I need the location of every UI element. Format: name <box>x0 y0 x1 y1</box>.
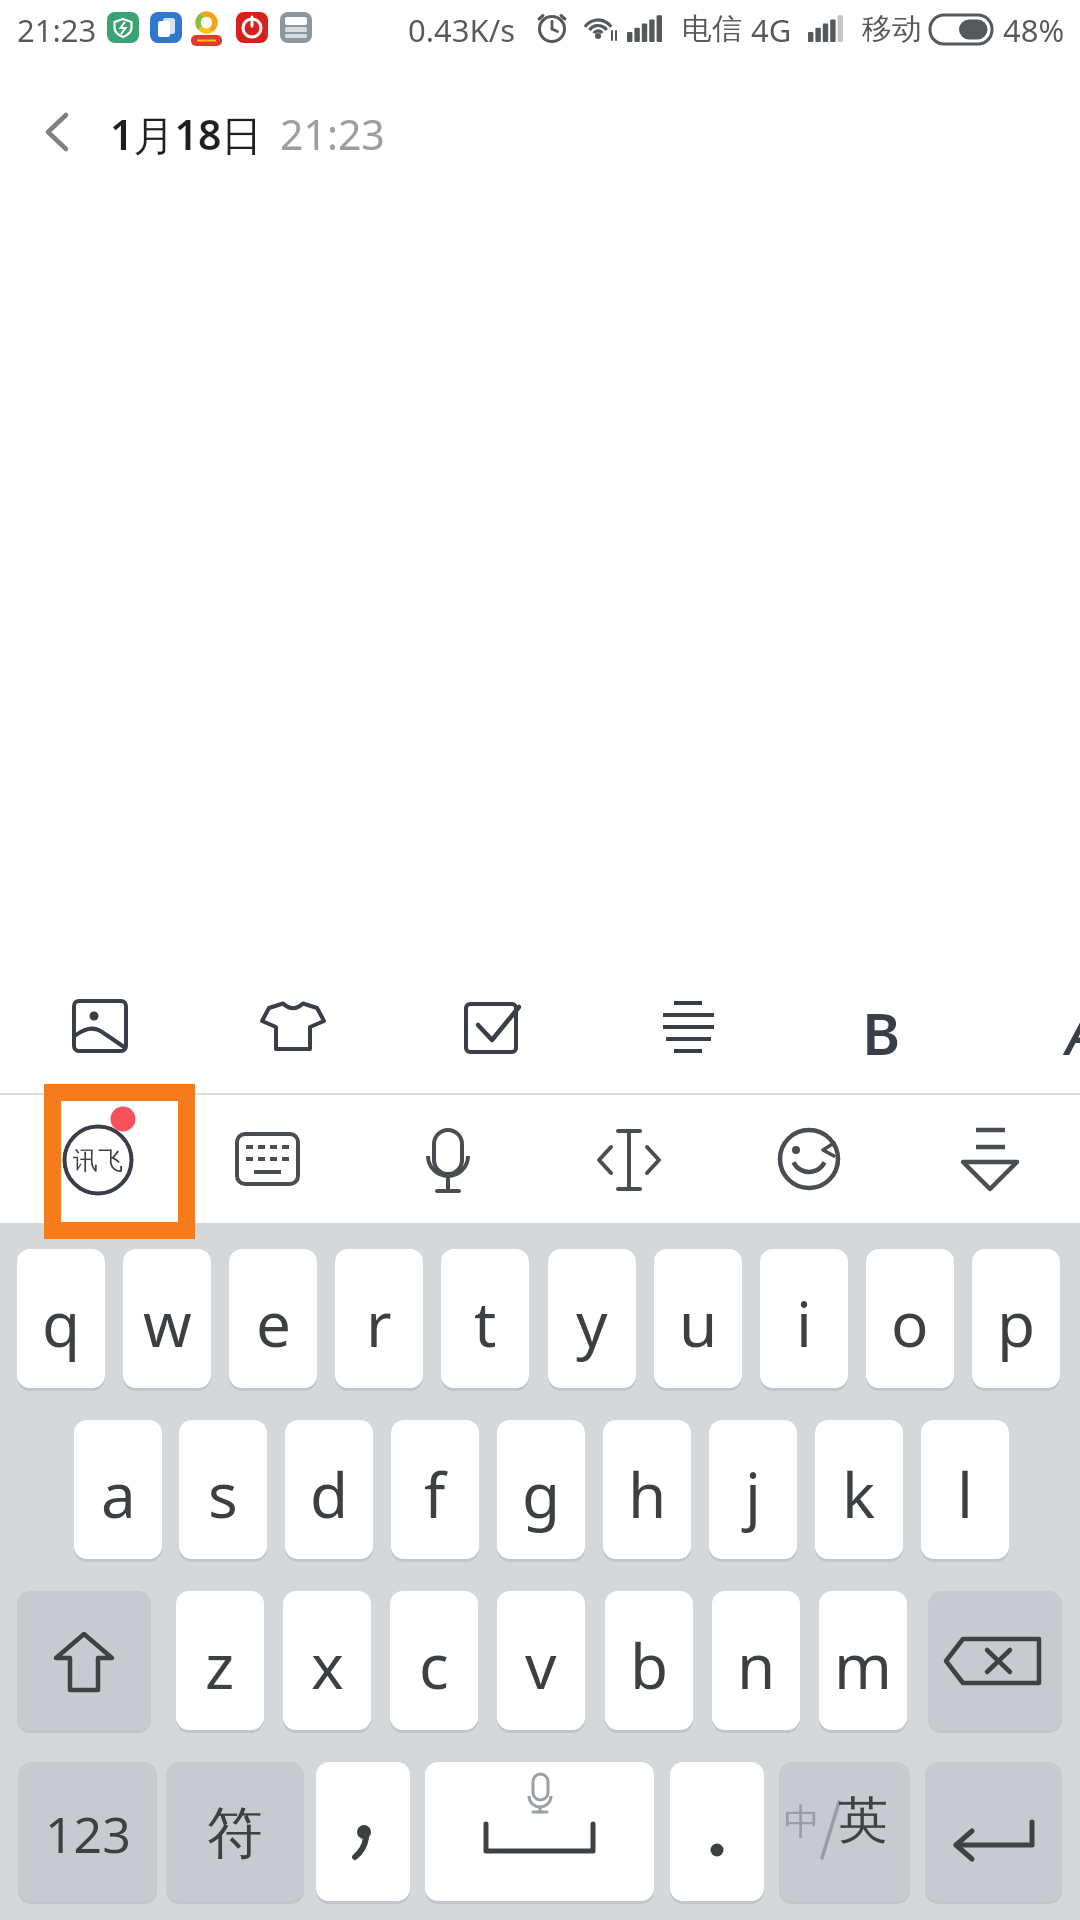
staticText: t <box>474 1281 497 1365</box>
button[interactable] <box>425 1762 654 1901</box>
button[interactable]: m <box>819 1591 907 1730</box>
button[interactable] <box>653 991 723 1061</box>
staticText: 英 <box>838 1789 888 1852</box>
staticText: d <box>310 1452 349 1536</box>
button[interactable] <box>772 1125 842 1195</box>
button[interactable] <box>846 991 916 1061</box>
button[interactable] <box>928 1591 1062 1730</box>
staticText: 中 <box>784 1799 820 1844</box>
button[interactable] <box>594 1125 664 1195</box>
button[interactable] <box>413 1125 483 1195</box>
button[interactable] <box>1045 991 1080 1061</box>
button[interactable] <box>455 991 525 1061</box>
button[interactable]: f <box>391 1420 479 1559</box>
staticText: h <box>628 1452 667 1536</box>
button[interactable]: h <box>603 1420 691 1559</box>
button[interactable]: v <box>497 1591 585 1730</box>
button[interactable] <box>17 1591 151 1730</box>
button[interactable]: d <box>285 1420 373 1559</box>
staticText: 符 <box>207 1798 263 1869</box>
staticText: A <box>1066 993 1080 1072</box>
button[interactable]: u <box>654 1249 742 1388</box>
button[interactable] <box>44 1084 195 1239</box>
button[interactable]: i <box>760 1249 848 1388</box>
button[interactable] <box>30 100 90 164</box>
staticText: r <box>366 1281 392 1365</box>
staticText: q <box>42 1281 81 1365</box>
button[interactable]: z <box>176 1591 264 1730</box>
staticText: 21:23 <box>17 9 97 51</box>
staticText: 48% <box>1003 9 1065 51</box>
staticText: 移动 <box>862 10 922 48</box>
button[interactable] <box>779 1762 910 1901</box>
staticText: B <box>862 993 901 1072</box>
staticText: b <box>630 1623 669 1707</box>
button[interactable] <box>953 1125 1023 1195</box>
staticText: w <box>143 1281 192 1365</box>
staticText: c <box>419 1623 449 1707</box>
staticText: s <box>208 1452 238 1536</box>
staticText: j <box>745 1452 761 1536</box>
button[interactable]: n <box>712 1591 800 1730</box>
staticText: l <box>957 1452 973 1536</box>
staticText: k <box>842 1452 876 1536</box>
staticText: 电信 <box>682 10 742 48</box>
staticText: y <box>576 1281 608 1365</box>
button[interactable]: 123 <box>18 1762 157 1901</box>
button[interactable]: j <box>709 1420 797 1559</box>
button[interactable] <box>232 1125 302 1195</box>
button[interactable] <box>258 991 328 1061</box>
button[interactable]: y <box>548 1249 636 1388</box>
staticText: p <box>997 1281 1036 1365</box>
button[interactable]: t <box>441 1249 529 1388</box>
button[interactable]: e <box>229 1249 317 1388</box>
button[interactable]: o <box>866 1249 954 1388</box>
staticText: m <box>834 1623 892 1707</box>
staticText: a <box>101 1452 136 1536</box>
button[interactable]: q <box>17 1249 105 1388</box>
staticText: x <box>311 1623 344 1707</box>
staticText: 讯飞 <box>73 1145 123 1176</box>
staticText: o <box>891 1281 929 1365</box>
staticText: 123 <box>45 1800 131 1868</box>
button[interactable] <box>925 1762 1062 1901</box>
button[interactable]: b <box>605 1591 693 1730</box>
staticText: n <box>737 1623 776 1707</box>
button[interactable]: 符 <box>166 1762 304 1901</box>
button[interactable]: k <box>815 1420 903 1559</box>
staticText: z <box>205 1623 235 1707</box>
staticText: g <box>522 1452 561 1536</box>
staticText: 1月18日 <box>110 106 263 162</box>
button[interactable]: a <box>74 1420 162 1559</box>
button[interactable] <box>670 1762 764 1901</box>
staticText: 4G <box>751 9 792 51</box>
staticText: v <box>525 1623 557 1707</box>
staticText: i <box>796 1281 812 1365</box>
button[interactable]: l <box>921 1420 1009 1559</box>
button[interactable]: w <box>123 1249 211 1388</box>
staticText: 0.43K/s <box>408 9 516 51</box>
button[interactable]: c <box>390 1591 478 1730</box>
button[interactable]: s <box>179 1420 267 1559</box>
button[interactable] <box>316 1762 410 1901</box>
staticText: f <box>424 1452 446 1536</box>
button[interactable]: x <box>283 1591 371 1730</box>
staticText: u <box>679 1281 718 1365</box>
button[interactable] <box>64 991 134 1061</box>
staticText: 21:23 <box>280 106 385 162</box>
button[interactable]: g <box>497 1420 585 1559</box>
button[interactable]: p <box>972 1249 1060 1388</box>
staticText: e <box>256 1281 291 1365</box>
button[interactable]: r <box>335 1249 423 1388</box>
